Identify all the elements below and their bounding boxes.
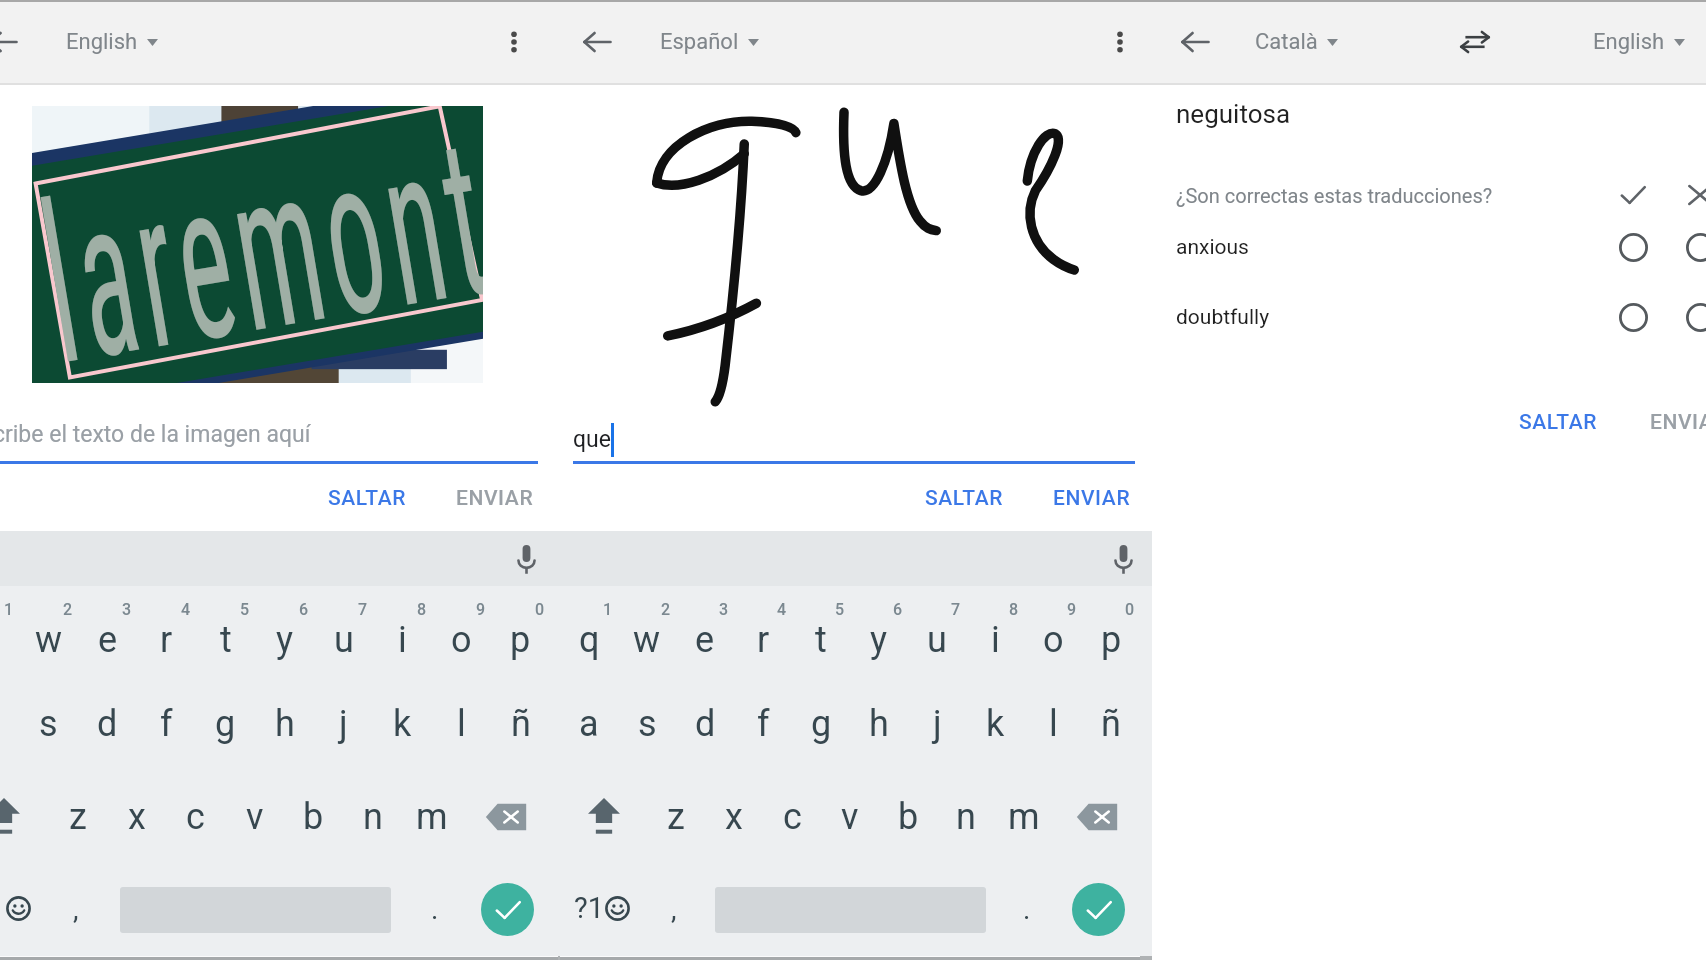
button[interactable]: ENVIAR — [1640, 404, 1706, 441]
button[interactable]: SALTAR — [1509, 404, 1607, 441]
button[interactable]: 2 — [618, 586, 676, 678]
button[interactable]: SALTAR — [915, 480, 1013, 517]
button[interactable]: j — [314, 678, 373, 770]
button[interactable]: Space — [704, 863, 997, 956]
button[interactable]: h — [255, 678, 314, 770]
button[interactable]: doubtfully correct — [1609, 294, 1657, 340]
button[interactable]: s — [19, 678, 78, 770]
button[interactable]: c — [166, 770, 225, 863]
button[interactable]: Space — [106, 863, 404, 956]
button[interactable]: h — [850, 678, 908, 770]
button[interactable]: d — [676, 678, 734, 770]
staticText: j — [339, 703, 348, 745]
staticText: neguitosa — [1176, 99, 1291, 129]
button[interactable]: doubtfully incorrect — [1676, 294, 1706, 340]
button[interactable]: d — [78, 678, 137, 770]
button[interactable]: 4 — [734, 586, 792, 678]
button[interactable]: Voice input — [504, 537, 548, 581]
button[interactable]: 5 — [196, 586, 255, 678]
button[interactable]: k — [966, 678, 1024, 770]
button[interactable]: n — [937, 770, 995, 863]
button[interactable]: 3 — [676, 586, 734, 678]
staticText: g — [811, 703, 832, 745]
button[interactable]: x — [107, 770, 166, 863]
button[interactable]: Català — [1251, 21, 1342, 63]
button[interactable]: doubtfully — [1152, 294, 1706, 340]
button[interactable]: anxious incorrect — [1676, 224, 1706, 270]
staticText: 1 — [4, 600, 14, 619]
button[interactable]: Enter — [1057, 863, 1140, 956]
button[interactable]: l — [432, 678, 491, 770]
button[interactable]: Enter — [465, 863, 550, 956]
button[interactable]: anxious correct — [1609, 224, 1657, 270]
button[interactable]: . — [997, 863, 1057, 956]
button[interactable]: Backspace — [1053, 770, 1140, 863]
button[interactable]: z — [48, 770, 107, 863]
button[interactable]: 6 — [255, 586, 314, 678]
button[interactable]: v — [225, 770, 284, 863]
button[interactable]: . — [404, 863, 465, 956]
button[interactable]: ENVIAR — [446, 480, 544, 517]
button[interactable]: 3 — [78, 586, 137, 678]
button[interactable]: j — [908, 678, 966, 770]
button[interactable]: m — [995, 770, 1053, 863]
button[interactable]: Shift — [560, 770, 647, 863]
button[interactable]: 7 — [314, 586, 373, 678]
button[interactable]: Swap languages — [1453, 20, 1497, 64]
button[interactable]: Back — [575, 20, 619, 64]
button[interactable]: Back — [1173, 20, 1217, 64]
button[interactable]: v — [821, 770, 879, 863]
button[interactable]: 5 — [792, 586, 850, 678]
button[interactable]: 2 — [19, 586, 78, 678]
button[interactable]: c — [763, 770, 821, 863]
button[interactable]: 4 — [137, 586, 196, 678]
button[interactable]: Symbols and emoji — [0, 863, 45, 956]
button[interactable]: m — [402, 770, 461, 863]
button[interactable]: 1 — [0, 586, 19, 678]
button[interactable]: 7 — [908, 586, 966, 678]
button[interactable]: More options — [492, 20, 536, 64]
button[interactable]: Back — [0, 20, 25, 64]
button[interactable]: ñ — [491, 678, 550, 770]
button[interactable]: b — [284, 770, 343, 863]
button[interactable]: ENVIAR — [1043, 480, 1141, 517]
button[interactable]: g — [196, 678, 255, 770]
button[interactable]: Backspace — [461, 770, 550, 863]
button[interactable]: f — [734, 678, 792, 770]
button[interactable]: b — [879, 770, 937, 863]
button[interactable]: 0 — [491, 586, 550, 678]
button[interactable]: 0 — [1082, 586, 1140, 678]
button[interactable]: x — [705, 770, 763, 863]
button[interactable]: g — [792, 678, 850, 770]
button[interactable]: 9 — [1024, 586, 1082, 678]
button[interactable]: 8 — [966, 586, 1024, 678]
staticText: t — [220, 619, 232, 661]
button[interactable]: z — [647, 770, 705, 863]
button[interactable]: Shift — [0, 770, 48, 863]
button[interactable]: k — [373, 678, 432, 770]
button[interactable]: f — [137, 678, 196, 770]
button[interactable]: , — [644, 863, 704, 956]
button[interactable]: s — [618, 678, 676, 770]
button[interactable]: More options — [1098, 20, 1142, 64]
button[interactable]: , — [45, 863, 106, 956]
button[interactable]: a — [560, 678, 618, 770]
button[interactable]: 1 — [560, 586, 618, 678]
button[interactable]: 6 — [850, 586, 908, 678]
button[interactable]: Mark all incorrect — [1676, 173, 1706, 217]
button[interactable]: English — [1589, 21, 1689, 63]
button[interactable]: anxious — [1152, 224, 1706, 270]
button[interactable]: Español — [656, 21, 763, 63]
button[interactable]: Voice input — [1101, 537, 1145, 581]
staticText: 9 — [476, 600, 486, 619]
button[interactable]: Symbols and emoji — [560, 863, 644, 956]
button[interactable]: l — [1024, 678, 1082, 770]
button[interactable]: 8 — [373, 586, 432, 678]
button[interactable]: English — [62, 21, 162, 63]
button[interactable]: ñ — [1082, 678, 1140, 770]
button[interactable]: n — [343, 770, 402, 863]
button[interactable]: Mark all correct — [1609, 173, 1657, 217]
button[interactable]: 9 — [432, 586, 491, 678]
button[interactable]: SALTAR — [318, 480, 416, 517]
